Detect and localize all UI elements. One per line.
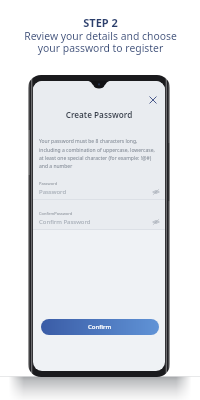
button[interactable]: Toggle password visibility [152, 219, 160, 225]
button[interactable]: Close [149, 96, 157, 104]
staticText: Confirm Password [39, 218, 152, 226]
staticText: Confirm [88, 323, 112, 331]
staticText: Review your details and choose your pass… [24, 29, 177, 55]
staticText: Create Password [33, 109, 165, 120]
staticText: Your password must be 8 characters long,… [39, 138, 160, 169]
button[interactable]: Confirm [41, 319, 159, 335]
staticText: Password [39, 181, 58, 186]
button[interactable]: Toggle password visibility [152, 189, 160, 195]
staticText: ConfirmPassword [39, 211, 73, 216]
staticText: STEP 2 [83, 15, 118, 30]
staticText: Password [39, 188, 152, 196]
